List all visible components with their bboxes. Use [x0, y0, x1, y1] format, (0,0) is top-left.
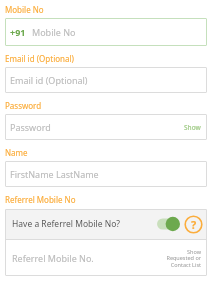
- button[interactable]: Referrel Mobile No.: [5, 240, 207, 276]
- staticText: Show: [184, 123, 201, 132]
- staticText: Referrel Mobile No: [5, 194, 76, 205]
- button[interactable]: Password: [5, 114, 207, 140]
- button[interactable]: FirstName LastName: [5, 161, 207, 187]
- staticText: Referrel Mobile No.: [12, 252, 166, 264]
- staticText: Email id (Optional): [5, 53, 74, 64]
- staticText: Mobile No: [5, 4, 44, 15]
- button[interactable]: Email id (Optional): [5, 67, 207, 93]
- staticText: Email id (Optional): [10, 74, 88, 86]
- button[interactable]: +91: [5, 18, 207, 46]
- staticText: Password: [5, 100, 42, 111]
- staticText: FirstName LastName: [10, 168, 99, 180]
- button[interactable]: Show: [178, 119, 207, 136]
- staticText: Password: [10, 121, 51, 133]
- staticText: Mobile No: [32, 26, 76, 38]
- staticText: Name: [5, 147, 28, 158]
- staticText: ?: [191, 217, 197, 232]
- button[interactable]: Show Requested or Contact List: [166, 248, 207, 269]
- staticText: Show Requested or Contact List: [166, 248, 201, 269]
- staticText: Have a Referrel Mobile No?: [12, 218, 155, 230]
- button[interactable]: Toggle referral mobile number: [155, 215, 181, 233]
- staticText: +91: [10, 26, 26, 38]
- button[interactable]: Have a Referrel Mobile No?: [5, 209, 207, 239]
- button[interactable]: Help about referral: [184, 215, 203, 234]
